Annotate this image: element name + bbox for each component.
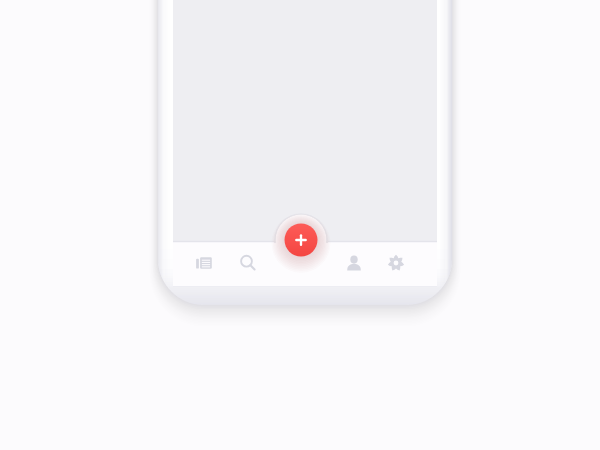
button[interactable]: Search: [231, 242, 281, 286]
button[interactable]: Feed: [173, 242, 231, 286]
button[interactable]: Settings: [387, 242, 437, 286]
button[interactable]: Add: [285, 224, 318, 257]
button[interactable]: Profile: [337, 242, 387, 286]
